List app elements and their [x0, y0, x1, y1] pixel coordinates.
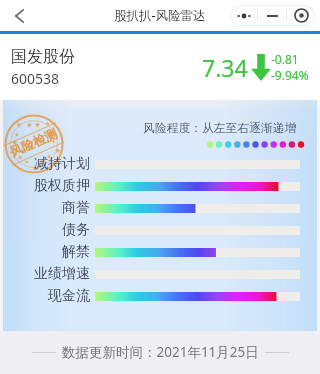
staticText: 7.34 — [202, 52, 248, 83]
staticText: 股权质押 — [34, 177, 90, 195]
button[interactable]: Close — [287, 5, 315, 26]
button[interactable]: More — [230, 5, 257, 26]
staticText: 600538 — [11, 69, 60, 88]
staticText: -9.94% — [271, 67, 309, 83]
staticText: 解禁 — [62, 243, 90, 261]
staticText: 业绩增速 — [34, 265, 90, 283]
staticText: 风险检测 — [7, 126, 60, 161]
staticText: -0.81 — [271, 51, 299, 67]
staticText: 商誉 — [62, 199, 90, 217]
staticText: 股扒扒-风险雷达 — [114, 7, 206, 24]
staticText: 债务 — [62, 221, 90, 239]
staticText: 减持计划 — [34, 155, 90, 173]
button[interactable]: Back — [7, 3, 32, 28]
staticText: 国发股份 — [11, 47, 75, 67]
button[interactable]: Minimize — [258, 5, 286, 26]
staticText: 现金流 — [48, 287, 90, 305]
staticText: 数据更新时间：2021年11月25日 — [62, 343, 259, 361]
staticText: 风险程度：从左至右逐渐递增 — [143, 121, 297, 136]
